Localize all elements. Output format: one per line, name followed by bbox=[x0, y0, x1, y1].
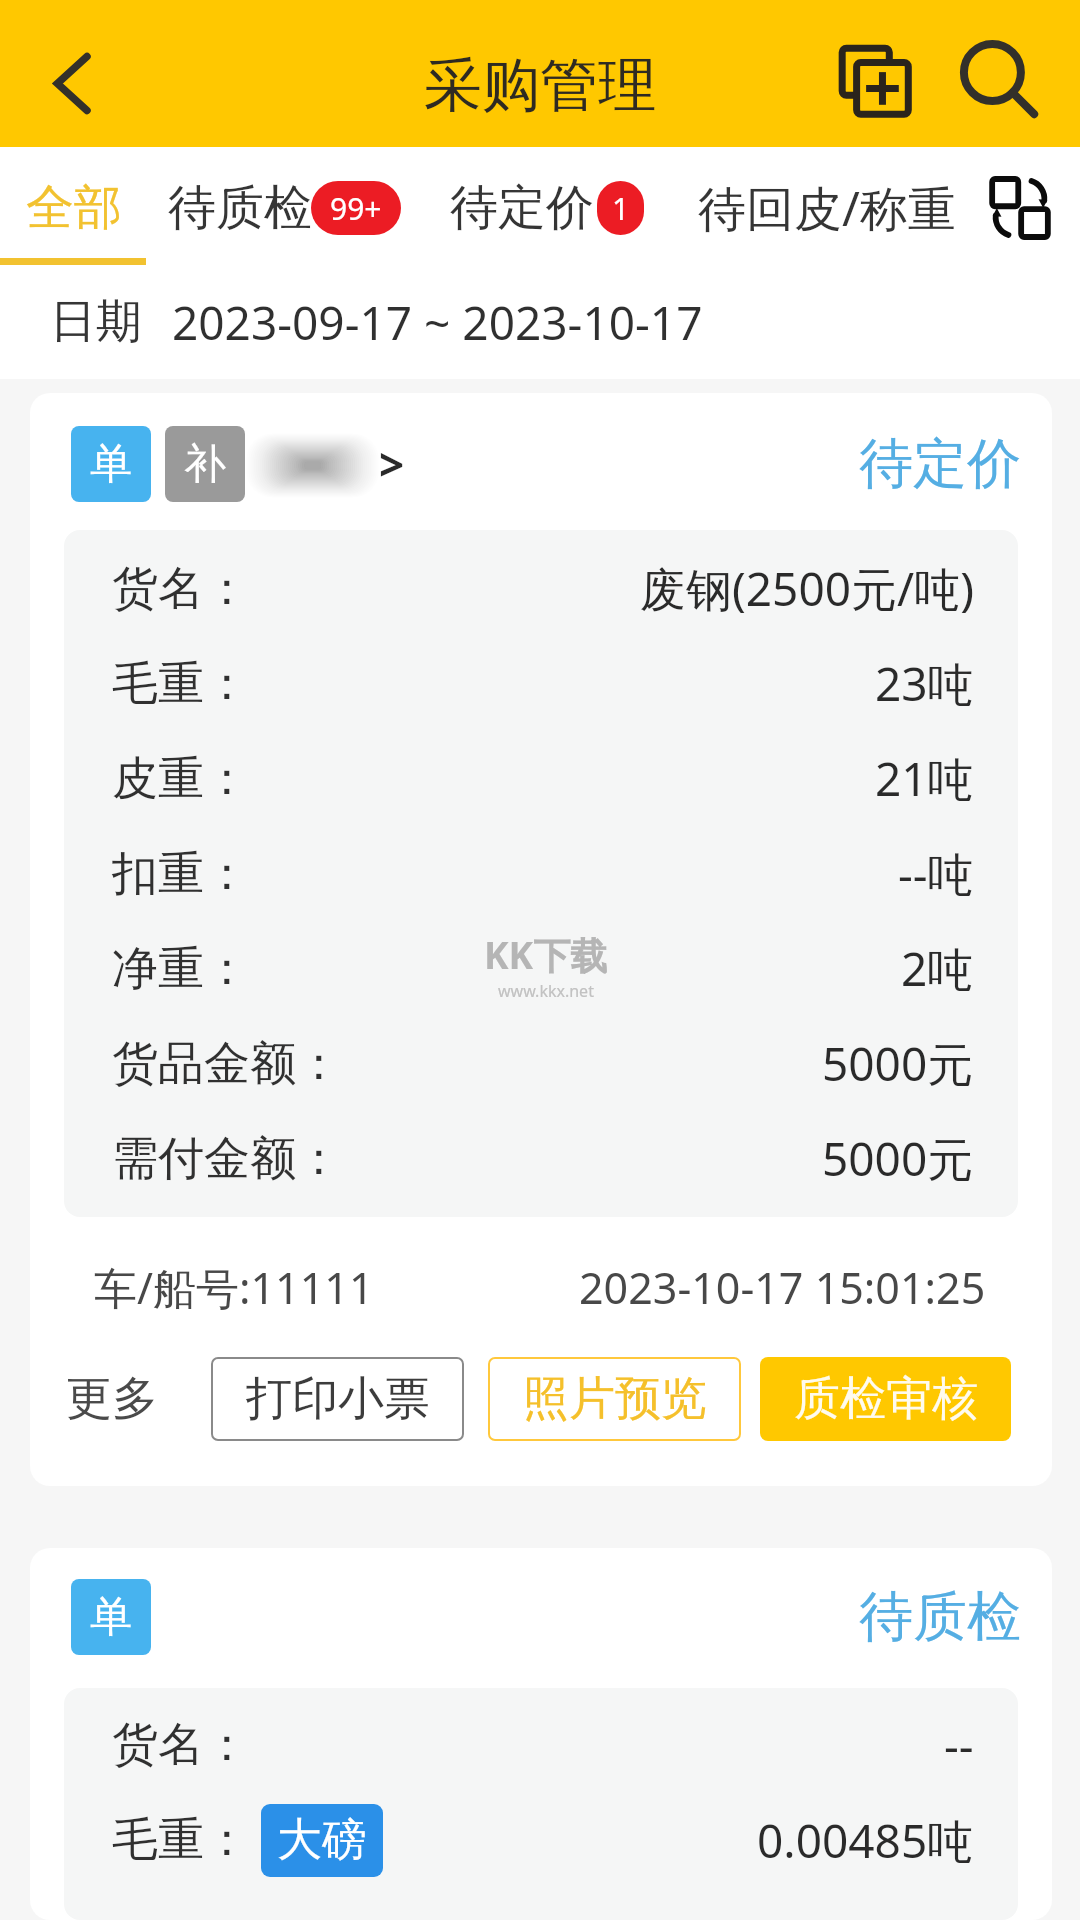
staticText: 待质检 bbox=[859, 1583, 1021, 1651]
staticText: 需付金额： bbox=[112, 1130, 342, 1188]
staticText: 货名： bbox=[112, 1716, 250, 1774]
staticText: 补 bbox=[184, 438, 226, 491]
staticText: 待定价 bbox=[859, 430, 1021, 498]
staticText: 5000元 bbox=[822, 1032, 974, 1095]
button[interactable]: Switch view bbox=[972, 160, 1068, 256]
button[interactable]: Back bbox=[24, 35, 120, 131]
staticText: 毛重： bbox=[112, 655, 250, 713]
staticText: 21吨 bbox=[875, 747, 974, 810]
button[interactable]: 日期 bbox=[0, 265, 1080, 379]
staticText: 99+ bbox=[330, 188, 382, 229]
staticText: 扣重： bbox=[112, 845, 250, 903]
staticText: 净重： bbox=[112, 940, 250, 998]
staticText: 质检审核 bbox=[794, 1370, 978, 1428]
button[interactable]: Search bbox=[950, 30, 1050, 130]
staticText: 日期 bbox=[50, 293, 142, 351]
staticText: 皮重： bbox=[112, 750, 250, 808]
staticText: -- bbox=[944, 1713, 974, 1776]
staticText: 单 bbox=[90, 438, 132, 491]
staticText: 2吨 bbox=[901, 937, 974, 1000]
button[interactable]: 货名： bbox=[64, 1688, 1018, 1920]
staticText: 待回皮/称重 bbox=[698, 175, 956, 241]
staticText: 货品金额： bbox=[112, 1035, 342, 1093]
button[interactable]: Supplier details bbox=[71, 1579, 151, 1655]
button[interactable]: 待定价 bbox=[440, 149, 604, 267]
staticText: 待定价 bbox=[450, 178, 594, 238]
button[interactable]: 货名： bbox=[64, 530, 1018, 1217]
staticText: 车/船号:11111 bbox=[94, 1258, 374, 1317]
staticText: > bbox=[379, 434, 405, 494]
staticText: 毛重： bbox=[112, 1811, 250, 1869]
button[interactable]: 待回皮/称重 bbox=[687, 149, 967, 267]
staticText: 2023-10-17 15:01:25 bbox=[579, 1258, 986, 1317]
staticText: 打印小票 bbox=[246, 1370, 430, 1428]
staticText: 大磅 bbox=[277, 1812, 367, 1869]
staticText: 货名： bbox=[112, 560, 250, 618]
button[interactable]: 全部 bbox=[18, 149, 130, 267]
staticText: 0.00485吨 bbox=[757, 1809, 974, 1872]
button[interactable]: 待质检 bbox=[158, 149, 321, 267]
staticText: 1 bbox=[612, 188, 630, 229]
staticText: 2023-09-17 ~ 2023-10-17 bbox=[172, 291, 703, 354]
staticText: 全部 bbox=[26, 178, 122, 238]
staticText: 5000元 bbox=[822, 1127, 974, 1190]
staticText: KK下载 bbox=[484, 929, 608, 980]
button[interactable]: New order bbox=[826, 32, 926, 132]
staticText: 照片预览 bbox=[523, 1370, 707, 1428]
button[interactable]: 照片预览 bbox=[488, 1357, 741, 1441]
staticText: 待质检 bbox=[168, 178, 312, 238]
staticText: 废钢(2500元/吨) bbox=[640, 557, 974, 620]
button[interactable]: 更多 bbox=[66, 1370, 158, 1428]
button[interactable]: 质检审核 bbox=[760, 1357, 1011, 1441]
staticText: 采购管理 bbox=[424, 49, 656, 122]
staticText: 23吨 bbox=[875, 652, 974, 715]
button[interactable]: Supplier details bbox=[71, 426, 405, 502]
staticText: 单 bbox=[90, 1591, 132, 1644]
staticText: www.kkx.net bbox=[498, 980, 594, 1002]
button[interactable]: 打印小票 bbox=[211, 1357, 464, 1441]
staticText: --吨 bbox=[898, 842, 974, 905]
